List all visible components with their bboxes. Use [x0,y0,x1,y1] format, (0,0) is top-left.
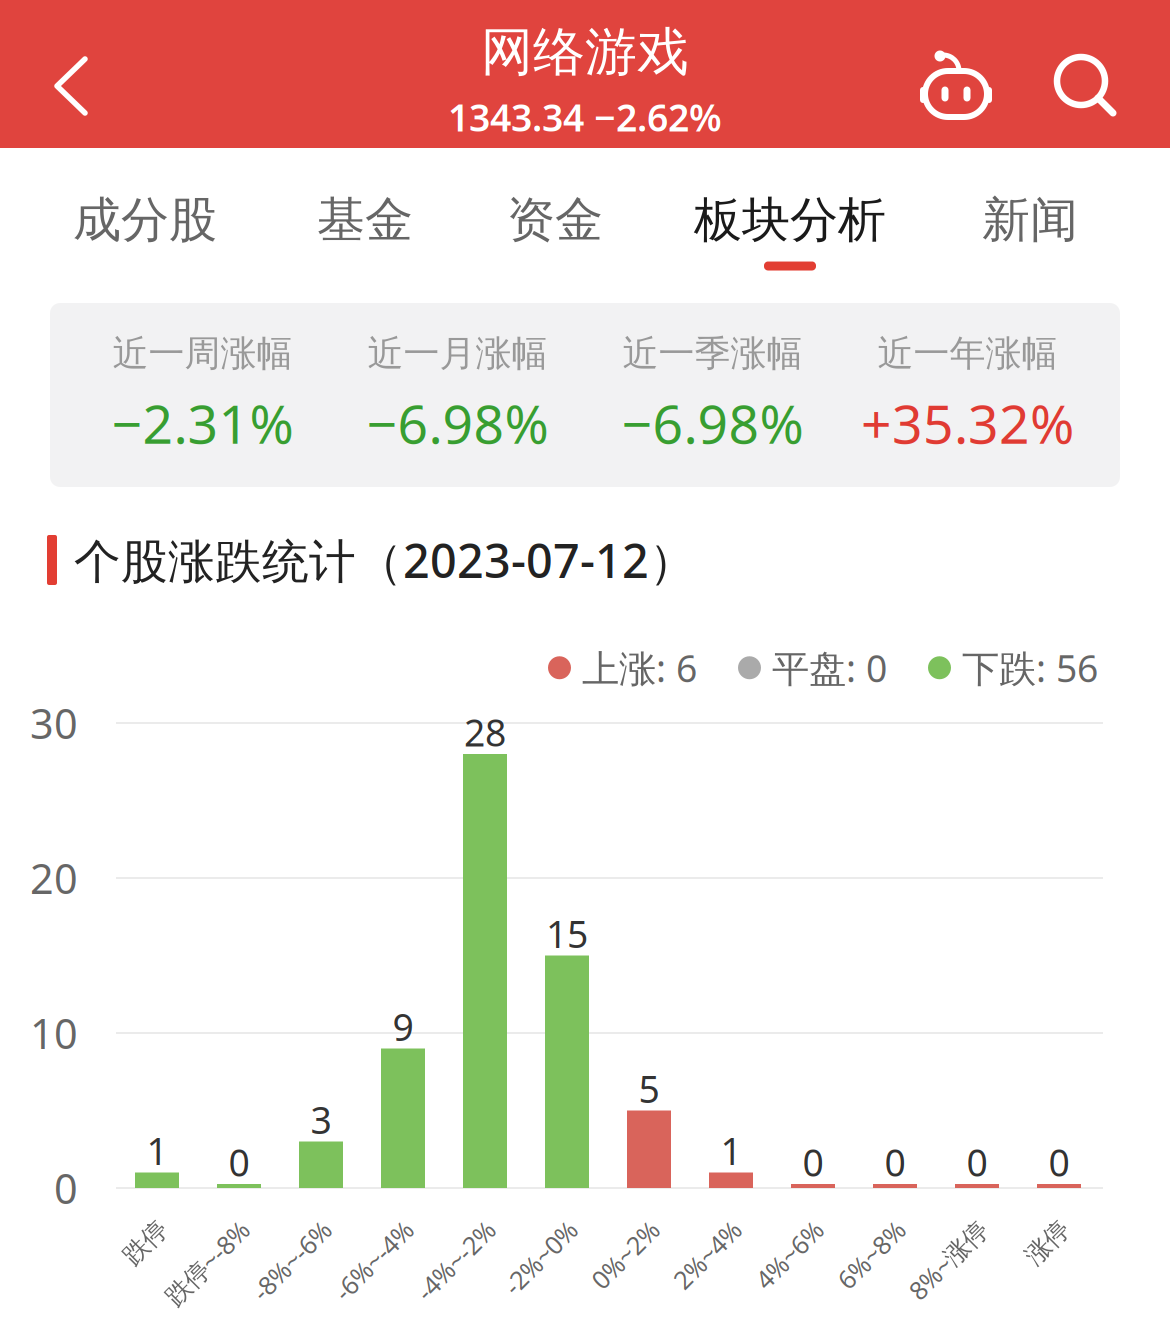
staticText: 2%~4% [653,1208,737,1242]
staticText: 近一月涨幅 [367,331,547,376]
staticText: 资金 [507,190,603,249]
staticText: 上涨: 6 [582,643,697,693]
staticText: 8%~涨停 [884,1208,983,1242]
staticText: 跌停~-8% [138,1208,245,1242]
staticText: 30 [30,696,78,750]
staticText: -8%~-6% [227,1208,327,1242]
staticText: 成分股 [73,190,217,249]
staticText: 近一周涨幅 [112,331,292,376]
staticText: 0%~2% [571,1208,655,1242]
staticText: 0 [884,1137,905,1187]
staticText: 新闻 [982,190,1078,249]
staticText: 10 [30,1006,78,1060]
staticText: 板块分析 [694,190,886,249]
staticText: 28 [464,707,506,757]
staticText: 0 [228,1137,249,1187]
button[interactable]: Assistant [919,50,993,118]
staticText: 跌停 [113,1209,163,1240]
staticText: 0 [802,1137,823,1187]
staticText: 下跌: 56 [962,643,1098,693]
staticText: 6%~8% [817,1208,901,1242]
staticText: 近一年涨幅 [877,331,1057,376]
staticText: -2%~0% [481,1208,573,1242]
staticText: −6.98% [621,388,803,458]
staticText: 15 [546,909,588,958]
button[interactable]: 资金 [495,174,615,265]
staticText: 近一季涨幅 [622,331,802,376]
button[interactable]: Search [1055,55,1117,117]
staticText: 0 [1048,1137,1069,1187]
button[interactable]: Back [31,36,111,136]
button[interactable]: 新闻 [970,174,1090,265]
staticText: 0 [966,1137,987,1187]
staticText: 3 [310,1095,331,1144]
staticText: −2.31% [111,388,293,458]
button[interactable]: 基金 [305,174,425,265]
button[interactable]: 成分股 [61,174,229,265]
staticText: 基金 [317,190,413,249]
staticText: 0 [54,1161,78,1215]
staticText: -6%~-4% [309,1208,409,1242]
staticText: 网络游戏 [481,20,689,84]
staticText: −6.98% [366,388,548,458]
staticText: 4%~6% [735,1208,819,1242]
staticText: +35.32% [861,388,1074,458]
staticText: 涨停 [1015,1209,1065,1240]
staticText: 9 [392,1002,413,1051]
button[interactable]: 板块分析 [682,174,898,265]
staticText: 20 [30,851,78,905]
staticText: 1 [720,1126,741,1175]
staticText: -4%~-2% [391,1208,491,1242]
staticText: 1 [146,1126,167,1175]
staticText: 5 [638,1064,659,1113]
staticText: 平盘: 0 [772,643,887,693]
staticText: 1343.34 −2.62% [448,92,722,142]
staticText: 个股涨跌统计（2023-07-12） [74,529,696,591]
